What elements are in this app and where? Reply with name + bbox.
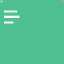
button[interactable]: Menu xyxy=(0,0,3,3)
button[interactable]: Good morning xyxy=(4,10,18,13)
button[interactable]: Profile xyxy=(61,0,64,3)
button[interactable]: See details xyxy=(4,21,15,24)
button[interactable]: Your schedule xyxy=(4,15,21,18)
